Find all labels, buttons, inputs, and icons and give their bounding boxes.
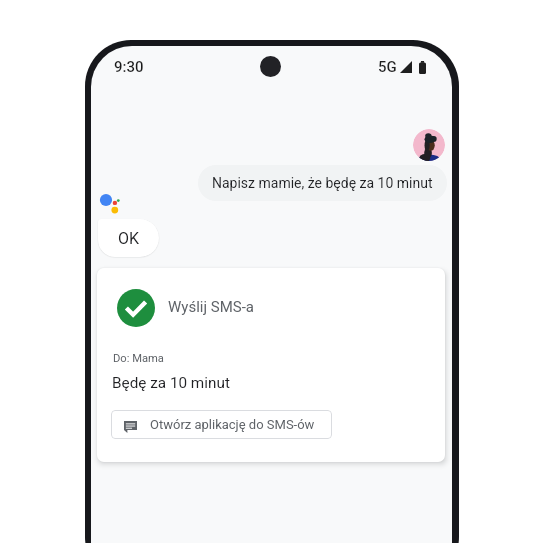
staticText: 5G [378,58,397,76]
staticText: Do: Mama [113,352,164,365]
staticText: Otwórz aplikację do SMS-ów [150,417,315,432]
button[interactable]: OK [98,219,159,257]
button[interactable]: Profil uzytkownika [413,129,445,161]
button[interactable]: Otwórz aplikację do SMS-ów [111,410,332,439]
button[interactable]: Wyślij SMS-a [97,268,445,462]
button[interactable]: Asystent Google [99,192,123,216]
staticText: Napisz mamie, że będę za 10 minut [212,175,433,191]
staticText: OK [118,229,140,248]
staticText: 9:30 [114,58,144,76]
button[interactable]: Napisz mamie, że będę za 10 minut [198,165,447,201]
staticText: Będę za 10 minut [112,374,230,392]
staticText: Wyślij SMS-a [168,298,254,316]
